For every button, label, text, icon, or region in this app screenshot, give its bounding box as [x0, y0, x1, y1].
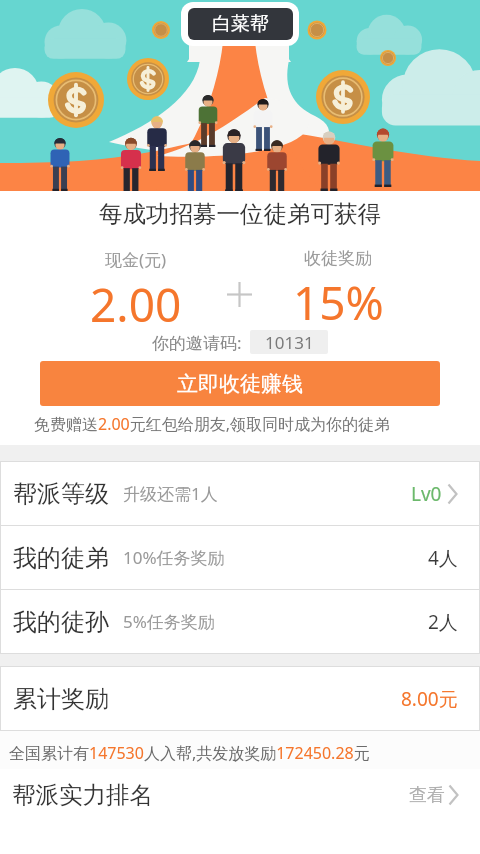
button[interactable]: 立即收徒赚钱 [40, 361, 440, 406]
staticText: 10%任务奖励 [123, 546, 225, 569]
staticText: 2.00 [90, 273, 182, 324]
staticText: 4人 [428, 545, 458, 571]
staticText: 我的徒孙 [13, 607, 109, 637]
button[interactable]: 我的徒弟 [1, 526, 479, 589]
staticText: 我的徒弟 [13, 543, 109, 573]
staticText: 10131 [265, 331, 314, 354]
staticText: Lv0 [411, 481, 442, 507]
button[interactable]: 帮派等级 [1, 462, 479, 525]
staticText: 你的邀请码: [152, 331, 242, 354]
staticText: 立即收徒赚钱 [177, 371, 303, 397]
button[interactable]: 我的徒孙 [1, 590, 479, 653]
staticText: 升级还需1人 [123, 482, 218, 505]
staticText: 免费赠送2.00元红包给朋友,领取同时成为你的徒弟 [34, 413, 391, 435]
staticText: 收徒奖励 [304, 248, 372, 269]
staticText: 累计奖励 [13, 684, 109, 714]
button[interactable]: 帮派实力排名 [0, 769, 480, 821]
button[interactable]: 累计奖励 [1, 667, 479, 730]
staticText: 白菜帮 [212, 12, 269, 36]
button[interactable]: 白菜帮 [188, 8, 293, 40]
staticText: 查看 [409, 784, 445, 807]
staticText: 2人 [428, 609, 458, 635]
staticText: 帮派实力排名 [12, 780, 153, 810]
staticText: 全国累计有147530人入帮,共发放奖励172450.28元 [9, 742, 370, 764]
staticText: 5%任务奖励 [123, 610, 215, 633]
staticText: 15% [293, 271, 384, 324]
staticText: 现金(元) [105, 248, 167, 271]
staticText: 帮派等级 [13, 479, 109, 509]
staticText: 8.00元 [401, 686, 458, 712]
staticText: 每成功招募一位徒弟可获得 [99, 199, 381, 229]
button[interactable]: 10131 [250, 330, 328, 354]
